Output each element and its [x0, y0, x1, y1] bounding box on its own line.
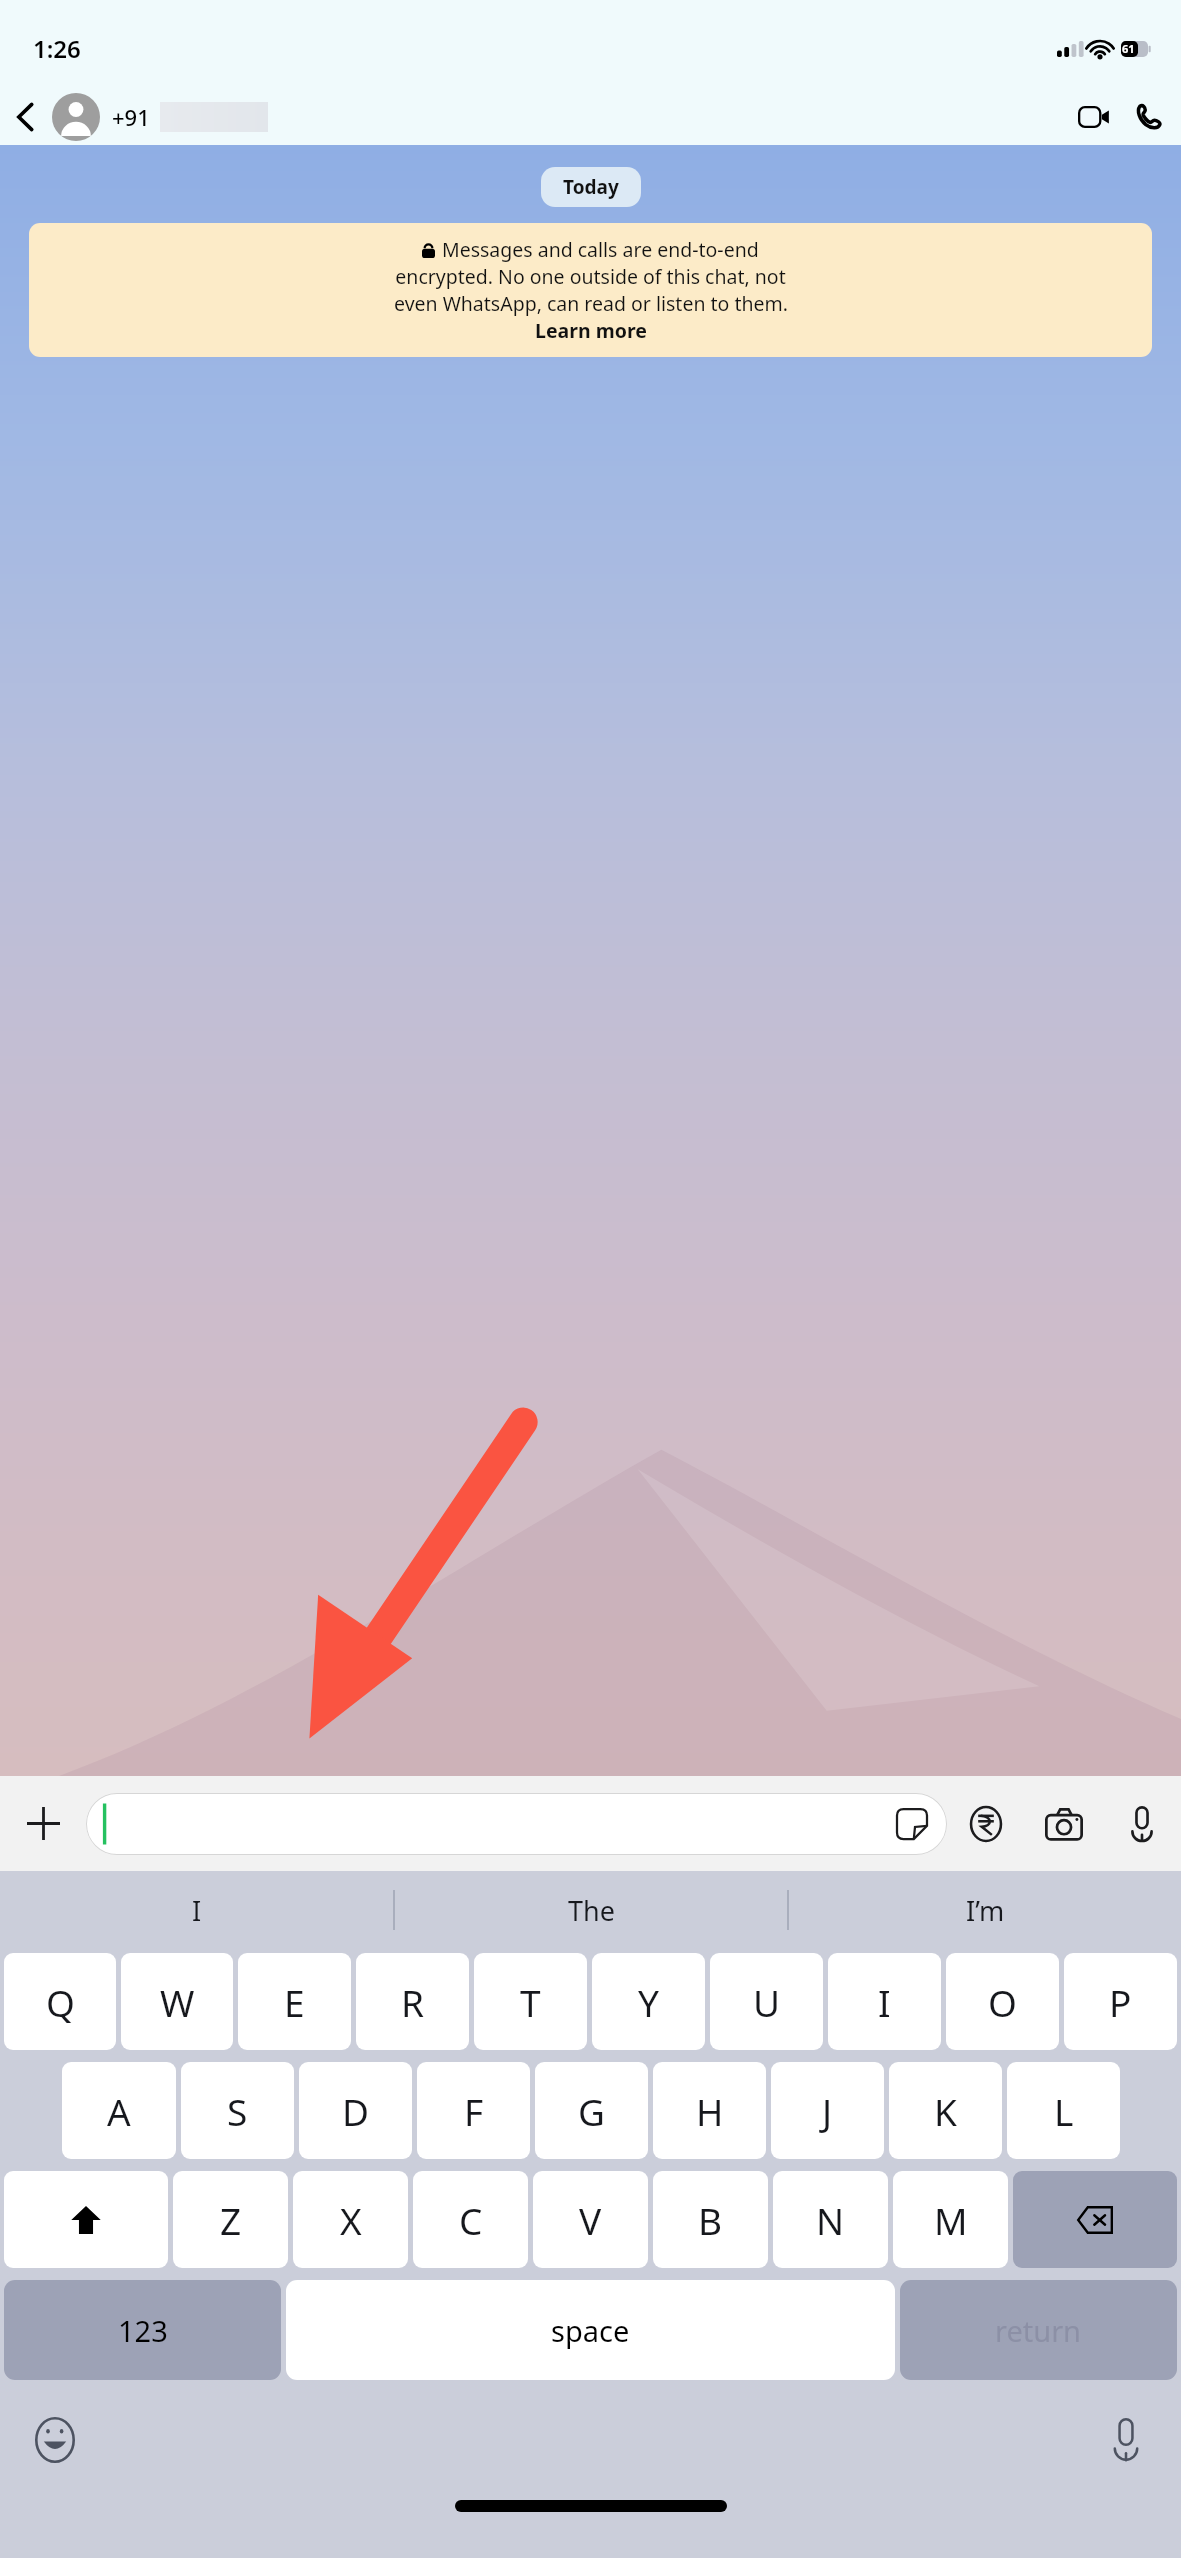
- button[interactable]: T: [474, 1953, 587, 2050]
- staticText: C: [459, 2195, 483, 2245]
- button[interactable]: Video call: [1065, 88, 1123, 145]
- staticText: M: [934, 2195, 968, 2245]
- staticText: Q: [46, 1977, 75, 2027]
- button[interactable]: P: [1064, 1953, 1177, 2050]
- staticText: The: [568, 1892, 615, 1929]
- button[interactable]: Z: [173, 2171, 288, 2268]
- staticText: I: [192, 1892, 202, 1929]
- staticText: 123: [118, 2311, 168, 2350]
- staticText: V: [579, 2195, 602, 2245]
- button[interactable]: X: [293, 2171, 408, 2268]
- button[interactable]: Voice call: [1123, 88, 1173, 145]
- button[interactable]: H: [653, 2062, 766, 2159]
- button[interactable]: U: [710, 1953, 823, 2050]
- staticText: S: [227, 2086, 248, 2136]
- staticText: P: [1109, 1977, 1132, 2027]
- staticText: G: [578, 2086, 605, 2136]
- button[interactable]: 123: [4, 2280, 281, 2380]
- button[interactable]: A: [62, 2062, 176, 2159]
- button[interactable]: I: [0, 1871, 393, 1949]
- button[interactable]: Q: [4, 1953, 116, 2050]
- staticText: D: [342, 2086, 370, 2136]
- staticText: U: [753, 1977, 781, 2027]
- staticText: W: [160, 1977, 195, 2027]
- button[interactable]: Messages and calls are end-to-end: [29, 223, 1152, 357]
- button[interactable]: J: [771, 2062, 884, 2159]
- staticText: L: [1054, 2086, 1074, 2136]
- button[interactable]: F: [417, 2062, 530, 2159]
- staticText: 1:26: [33, 32, 81, 65]
- button[interactable]: Payments: [947, 1776, 1025, 1871]
- button[interactable]: Shift: [4, 2171, 168, 2268]
- staticText: X: [340, 2195, 362, 2245]
- staticText: J: [822, 2086, 833, 2136]
- staticText: 61: [1122, 41, 1135, 56]
- staticText: H: [696, 2086, 724, 2136]
- button[interactable]: Voice message: [1103, 1776, 1181, 1871]
- button[interactable]: Stickers: [86, 1793, 947, 1855]
- staticText: Learn more: [535, 317, 647, 344]
- staticText: I: [878, 1977, 891, 2027]
- button[interactable]: Stickers: [897, 1809, 927, 1839]
- staticText: +91: [112, 102, 150, 132]
- staticText: N: [816, 2195, 845, 2245]
- staticText: A: [107, 2086, 131, 2136]
- button[interactable]: Emoji: [14, 2392, 96, 2488]
- staticText: Today: [563, 174, 619, 200]
- button[interactable]: I: [828, 1953, 941, 2050]
- staticText: B: [698, 2195, 723, 2245]
- button[interactable]: D: [299, 2062, 412, 2159]
- button[interactable]: K: [889, 2062, 1002, 2159]
- button[interactable]: R: [356, 1953, 469, 2050]
- staticText: return: [995, 2311, 1082, 2350]
- staticText: Messages and calls are end-to-end: [442, 236, 759, 263]
- button[interactable]: C: [413, 2171, 528, 2268]
- button[interactable]: Backspace: [1013, 2171, 1177, 2268]
- button[interactable]: The: [395, 1871, 787, 1949]
- staticText: K: [934, 2086, 957, 2136]
- button[interactable]: Camera: [1025, 1776, 1103, 1871]
- button[interactable]: Attach: [0, 1776, 86, 1871]
- button[interactable]: O: [946, 1953, 1059, 2050]
- staticText: Z: [220, 2195, 242, 2245]
- staticText: even WhatsApp, can read or listen to the…: [394, 290, 788, 317]
- button[interactable]: E: [238, 1953, 351, 2050]
- staticText: O: [988, 1977, 1017, 2027]
- staticText: F: [464, 2086, 484, 2136]
- button[interactable]: V: [533, 2171, 648, 2268]
- button[interactable]: G: [535, 2062, 648, 2159]
- staticText: space: [551, 2311, 630, 2350]
- staticText: Y: [638, 1977, 659, 2027]
- button[interactable]: M: [893, 2171, 1008, 2268]
- button[interactable]: Today: [563, 174, 619, 200]
- button[interactable]: Back: [0, 88, 52, 145]
- staticText: E: [284, 1977, 305, 2027]
- button[interactable]: Y: [592, 1953, 705, 2050]
- button[interactable]: S: [181, 2062, 294, 2159]
- staticText: R: [401, 1977, 425, 2027]
- button[interactable]: B: [653, 2171, 768, 2268]
- button[interactable]: N: [773, 2171, 888, 2268]
- button[interactable]: W: [121, 1953, 233, 2050]
- button[interactable]: return: [900, 2280, 1177, 2380]
- staticText: I’m: [966, 1892, 1005, 1929]
- button[interactable]: space: [286, 2280, 895, 2380]
- button[interactable]: Dictation: [1085, 2392, 1167, 2488]
- staticText: encrypted. No one outside of this chat, …: [395, 263, 786, 290]
- button[interactable]: L: [1007, 2062, 1120, 2159]
- button[interactable]: I’m: [789, 1871, 1181, 1949]
- staticText: T: [520, 1977, 541, 2027]
